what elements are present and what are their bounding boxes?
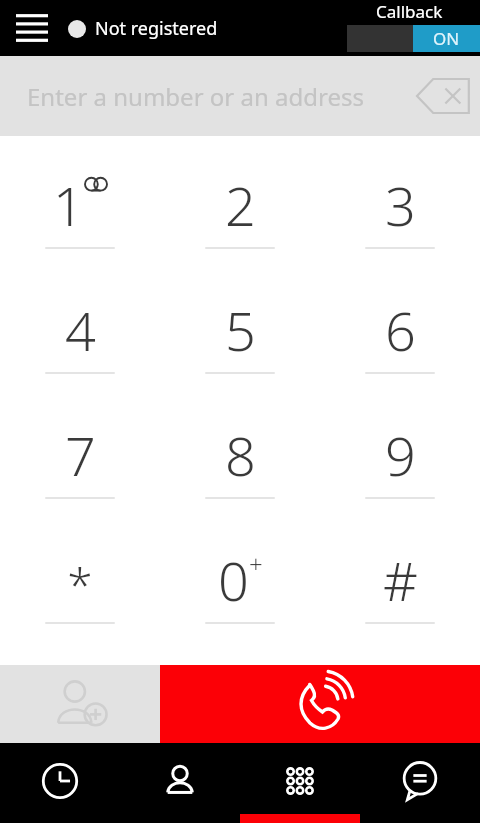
- button[interactable]: 5: [160, 287, 320, 412]
- staticText: *: [67, 553, 93, 616]
- staticText: 8: [225, 418, 256, 492]
- staticText: 4: [65, 293, 96, 367]
- staticText: +: [249, 547, 263, 580]
- button[interactable]: 9: [320, 412, 480, 537]
- button[interactable]: Dialpad: [240, 743, 360, 823]
- staticText: 6: [385, 293, 416, 367]
- button[interactable]: Call: [160, 665, 480, 743]
- button[interactable]: 3: [320, 162, 480, 287]
- button[interactable]: *: [0, 537, 160, 662]
- button[interactable]: Backspace: [416, 68, 472, 124]
- staticText: ON: [433, 27, 460, 50]
- staticText: 7: [65, 418, 96, 492]
- button[interactable]: 4: [0, 287, 160, 412]
- button[interactable]: 6: [320, 287, 480, 412]
- staticText: 5: [225, 293, 256, 367]
- staticText: 9: [385, 418, 416, 492]
- button[interactable]: ON: [347, 25, 480, 52]
- staticText: Not registered: [95, 16, 218, 41]
- button[interactable]: Not registered: [68, 16, 218, 41]
- staticText: Callback: [376, 0, 443, 23]
- button[interactable]: 1: [0, 162, 160, 287]
- staticText: 1: [53, 168, 84, 242]
- button[interactable]: Menu: [8, 4, 56, 52]
- staticText: 3: [385, 168, 416, 242]
- button[interactable]: Contacts: [120, 743, 240, 823]
- button[interactable]: Enter a number or an address: [0, 56, 480, 136]
- staticText: 0: [218, 543, 249, 617]
- staticText: 2: [225, 168, 256, 242]
- staticText: Enter a number or an address: [27, 80, 364, 113]
- button[interactable]: #: [320, 537, 480, 662]
- button[interactable]: 7: [0, 412, 160, 537]
- button[interactable]: 2: [160, 162, 320, 287]
- button[interactable]: Recents: [0, 743, 120, 823]
- button[interactable]: Add contact: [0, 665, 160, 743]
- button[interactable]: 0: [160, 537, 320, 662]
- staticText: #: [383, 543, 418, 617]
- button[interactable]: Messages: [360, 743, 480, 823]
- button[interactable]: 8: [160, 412, 320, 537]
